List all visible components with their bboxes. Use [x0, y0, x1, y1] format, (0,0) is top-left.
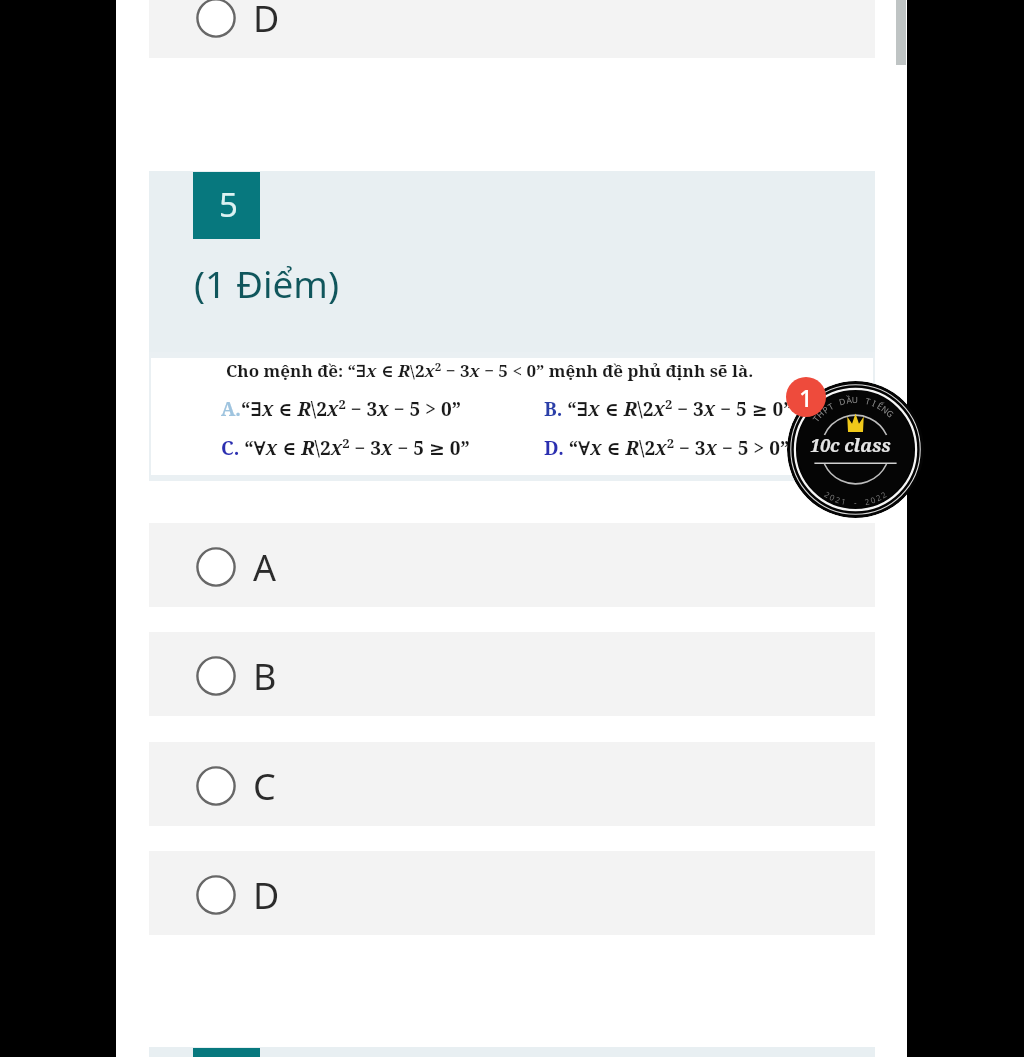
staticText: N	[879, 403, 892, 417]
staticText: T	[810, 413, 823, 425]
staticText: 0	[869, 493, 877, 505]
staticText: D	[253, 871, 280, 920]
staticText: 2	[874, 491, 883, 503]
staticText: H	[814, 407, 827, 421]
staticText: D. “∀x ∈ R\2x2 − 3x − 5 > 0”	[544, 434, 790, 460]
staticText: D	[253, 0, 280, 43]
staticText: I	[870, 397, 878, 410]
button[interactable]: 1 unread notification	[786, 377, 826, 417]
staticText: 2	[864, 495, 871, 507]
staticText: 1	[799, 381, 813, 414]
button[interactable]: 10c class bubble	[787, 381, 924, 518]
staticText: B. “∃x ∈ R\2x2 − 3x − 5 ≥ 0”	[544, 395, 793, 421]
button[interactable]: A	[149, 523, 875, 607]
staticText: 2	[834, 493, 842, 505]
button[interactable]: C	[149, 742, 875, 826]
staticText: (1 Điểm)	[194, 258, 340, 308]
staticText: 2	[822, 488, 832, 500]
staticText: 2	[879, 488, 889, 500]
staticText: Cho mệnh đề: “∃x ∈ R\2x2 − 3x − 5 < 0” m…	[226, 359, 754, 382]
staticText: P	[820, 403, 832, 416]
staticText: C	[253, 762, 276, 811]
staticText: A	[253, 543, 277, 592]
staticText: 10c class	[810, 433, 891, 458]
staticText: T	[864, 395, 872, 408]
button[interactable]: 5	[149, 171, 875, 481]
button[interactable]: B	[149, 632, 875, 716]
staticText: 5	[219, 182, 238, 227]
staticText: B	[253, 652, 277, 701]
staticText: U	[852, 394, 859, 406]
staticText: D	[838, 395, 848, 408]
staticText: T	[826, 400, 836, 413]
button[interactable]	[149, 1047, 875, 1057]
staticText: Ầ	[846, 394, 853, 407]
staticText: 1	[840, 495, 847, 507]
staticText: A.“∃x ∈ R\2x2 − 3x − 5 > 0”	[221, 395, 461, 421]
staticText: -	[854, 497, 857, 508]
staticText: 0	[828, 491, 837, 503]
staticText: C. “∀x ∈ R\2x2 − 3x − 5 ≥ 0”	[221, 434, 470, 460]
button[interactable]: D	[149, 0, 875, 58]
staticText: Ế	[875, 400, 885, 413]
staticText: G	[883, 407, 897, 421]
button[interactable]: D	[149, 851, 875, 935]
